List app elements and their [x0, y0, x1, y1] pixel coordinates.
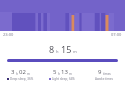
- staticText: h: [56, 49, 59, 54]
- staticText: times: [103, 72, 111, 76]
- staticText: Light sleep, 64%: [52, 77, 75, 81]
- staticText: m: [73, 49, 77, 54]
- staticText: h: [58, 72, 60, 76]
- staticText: 3: [11, 68, 15, 76]
- staticText: Deep sleep, 36%: [10, 77, 34, 81]
- staticText: 15: [61, 43, 72, 55]
- staticText: 9: [98, 68, 102, 76]
- staticText: 23:00: [3, 32, 14, 37]
- staticText: m: [69, 72, 72, 76]
- staticText: 07:00: [111, 32, 122, 37]
- staticText: 5: [53, 68, 57, 76]
- staticText: 8: [49, 43, 55, 55]
- button[interactable]: 5: [41, 68, 83, 81]
- staticText: h: [16, 72, 18, 76]
- button[interactable]: 3: [0, 68, 41, 81]
- staticText: Awake times: [95, 77, 113, 81]
- staticText: m: [27, 72, 30, 76]
- staticText: 02: [19, 68, 26, 76]
- staticText: 13: [61, 68, 68, 76]
- button[interactable]: 9: [83, 68, 125, 81]
